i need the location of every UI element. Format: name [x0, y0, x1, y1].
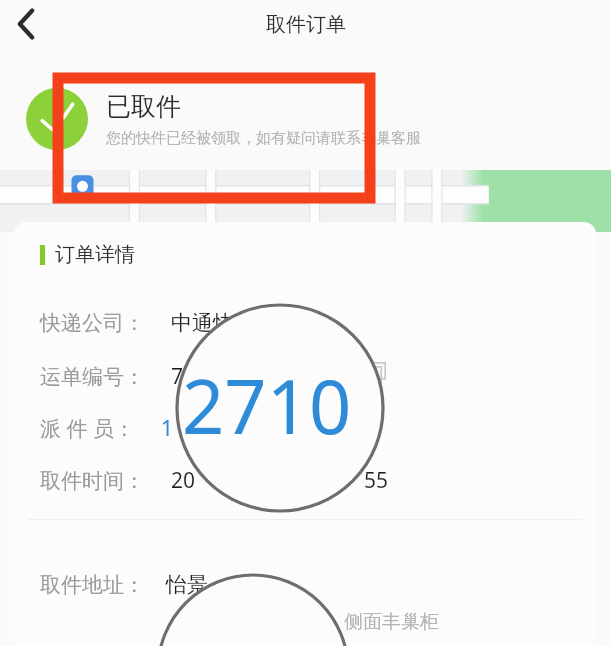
button[interactable]: 取件时间： [40, 466, 580, 495]
staticText: 75 [171, 362, 196, 391]
staticText: 2710 [182, 355, 352, 456]
staticText: 目 [360, 362, 381, 388]
staticText: 订单详情 [55, 242, 135, 267]
staticText: 取件时间： [40, 468, 145, 494]
staticText: 派 件 员： [40, 414, 135, 443]
staticText: 怡景 [166, 572, 208, 598]
staticText: 已取件 [106, 91, 181, 122]
staticText: 侧面丰巢柜 [344, 610, 439, 634]
staticText: 20 [171, 466, 196, 495]
staticText: 您的快件已经被领取，如有疑问请联系丰巢客服 [106, 129, 421, 148]
staticText: 取件订单 [266, 12, 346, 37]
button[interactable]: 已取件 [0, 88, 611, 150]
button[interactable]: 派 件 员： [40, 414, 580, 443]
button[interactable]: 快递公司： [40, 310, 580, 336]
staticText: 取件地址： [40, 572, 145, 598]
button[interactable]: 运单编号： [40, 362, 580, 391]
button[interactable]: Back [0, 0, 54, 48]
staticText: 55 [364, 466, 389, 495]
button[interactable]: Copy tracking number [358, 356, 392, 390]
staticText: 中通快递 [171, 310, 255, 336]
staticText: 快递公司： [40, 310, 145, 336]
staticText: 1 [161, 414, 174, 443]
staticText: 运单编号： [40, 364, 145, 390]
